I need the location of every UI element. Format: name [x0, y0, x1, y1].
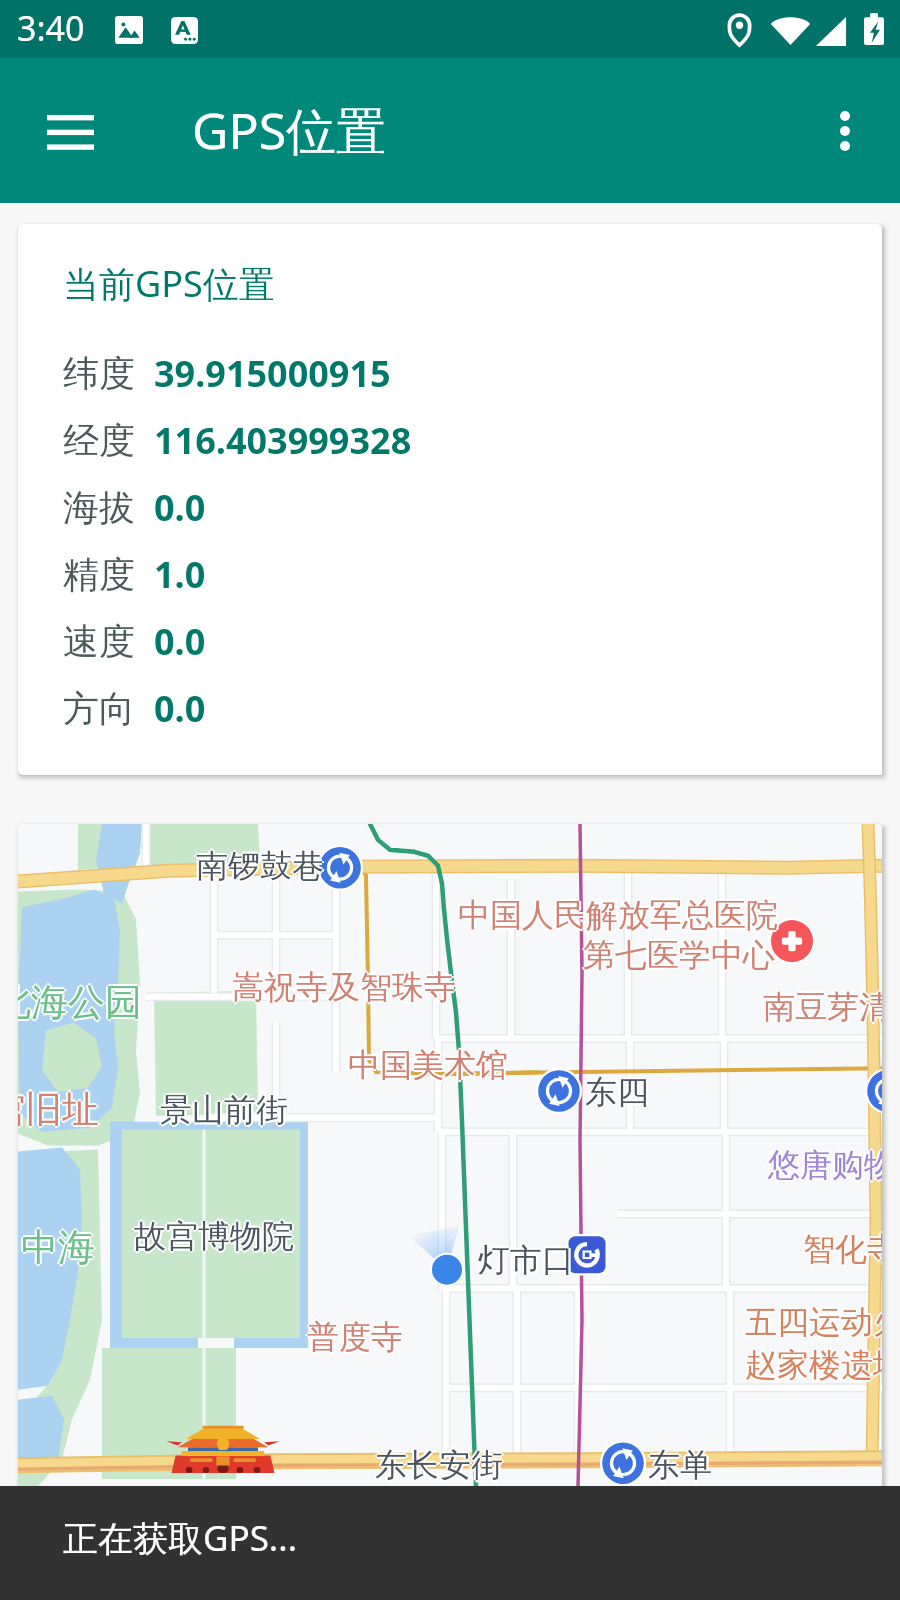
staticText: 东单: [650, 1445, 714, 1485]
staticText: 南豆芽清: [763, 987, 882, 1027]
staticText: 嵩祝寺及智珠寺: [232, 967, 456, 1007]
staticText: 馆旧址: [18, 1088, 99, 1135]
staticText: 南豆芽清: [765, 987, 882, 1027]
staticText: 第七医学中心: [583, 935, 775, 975]
staticText: 东单: [646, 1445, 710, 1485]
staticText: 赵家楼遗址: [745, 1347, 882, 1387]
staticText: 景山前街: [160, 1092, 288, 1132]
staticText: 故宫博物院: [134, 1216, 294, 1256]
staticText: 景山前街: [160, 1088, 288, 1128]
staticText: 南锣鼓巷: [198, 846, 326, 886]
staticText: 南锣鼓巷: [196, 848, 324, 888]
staticText: 中国人民解放军总医院: [458, 893, 778, 933]
staticText: 嵩祝寺及智珠寺: [234, 967, 458, 1007]
staticText: 馆旧址: [18, 1086, 97, 1133]
staticText: 南豆芽清: [763, 985, 882, 1025]
staticText: 东长安街: [375, 1447, 503, 1486]
staticText: 0.0: [154, 617, 206, 666]
staticText: 赵家楼遗址: [747, 1345, 882, 1385]
staticText: 东长安街: [375, 1445, 503, 1485]
staticText: 中国美术馆: [348, 1047, 508, 1087]
staticText: 馆旧址: [18, 1086, 101, 1133]
staticText: 普度寺: [305, 1317, 401, 1357]
staticText: 悠唐购物: [770, 1145, 882, 1185]
staticText: 第七医学中心: [583, 937, 775, 977]
staticText: 第七医学中心: [581, 935, 773, 975]
staticText: 普度寺: [307, 1315, 403, 1355]
staticText: 嵩祝寺及智珠寺: [232, 965, 456, 1005]
staticText: 五四运动火: [747, 1302, 882, 1342]
staticText: 中海: [21, 1224, 95, 1271]
staticText: 东四: [587, 1072, 651, 1112]
staticText: 中国美术馆: [348, 1045, 508, 1085]
staticText: 东长安街: [373, 1445, 501, 1485]
staticText: 北海公园: [18, 979, 144, 1026]
staticText: 智化寺: [803, 1231, 882, 1271]
staticText: 灯市口: [476, 1240, 572, 1280]
staticText: 当前GPS位置: [63, 259, 275, 308]
staticText: 3:40: [17, 5, 85, 51]
staticText: 0.0: [154, 684, 206, 733]
staticText: 赵家楼遗址: [745, 1343, 882, 1383]
staticText: 南豆芽清: [763, 989, 882, 1029]
staticText: 灯市口: [480, 1240, 576, 1280]
staticText: 第七医学中心: [583, 933, 775, 973]
staticText: 景山前街: [158, 1090, 286, 1130]
staticText: 正在获取GPS...: [63, 1514, 298, 1562]
staticText: 南锣鼓巷: [194, 846, 322, 886]
staticText: 南锣鼓巷: [196, 846, 324, 886]
staticText: 1.0: [154, 550, 206, 599]
staticText: GPS位置: [192, 96, 387, 164]
staticText: 普度寺: [307, 1317, 403, 1357]
staticText: 东四: [583, 1072, 647, 1112]
staticText: 故宫博物院: [134, 1214, 294, 1254]
staticText: 东单: [648, 1445, 712, 1485]
staticText: 中海: [23, 1224, 97, 1271]
staticText: 精度: [63, 552, 135, 597]
staticText: 东长安街: [377, 1445, 505, 1485]
staticText: 故宫博物院: [132, 1216, 292, 1256]
button[interactable]: Menu: [13, 74, 127, 188]
staticText: 东长安街: [375, 1443, 503, 1483]
staticText: 景山前街: [160, 1090, 288, 1130]
staticText: 北海公园: [18, 977, 142, 1024]
staticText: 海拔: [63, 485, 135, 530]
staticText: 速度: [63, 619, 135, 664]
staticText: 中海: [19, 1224, 93, 1271]
staticText: 普度寺: [307, 1319, 403, 1359]
staticText: 纬度: [63, 351, 135, 396]
staticText: 东四: [585, 1070, 649, 1110]
staticText: 中国美术馆: [348, 1043, 508, 1083]
staticText: 五四运动火: [745, 1302, 882, 1342]
staticText: 智化寺: [805, 1229, 882, 1269]
staticText: 悠唐购物: [768, 1147, 882, 1187]
staticText: 东单: [648, 1443, 712, 1483]
staticText: 赵家楼遗址: [745, 1345, 882, 1385]
button[interactable]: More options: [795, 81, 895, 181]
staticText: 南锣鼓巷: [196, 844, 324, 884]
staticText: 嵩祝寺及智珠寺: [230, 967, 454, 1007]
staticText: 赵家楼遗址: [743, 1345, 882, 1385]
staticText: 故宫博物院: [134, 1218, 294, 1258]
staticText: 五四运动火: [743, 1302, 882, 1342]
staticText: 五四运动火: [745, 1300, 882, 1340]
staticText: 馆旧址: [18, 1086, 99, 1133]
staticText: 中国人民解放军总医院: [458, 897, 778, 937]
staticText: 东四: [585, 1072, 649, 1112]
staticText: 中国美术馆: [350, 1045, 510, 1085]
staticText: 中国人民解放军总医院: [460, 895, 780, 935]
staticText: 中国人民解放军总医院: [458, 895, 778, 935]
staticText: 嵩祝寺及智珠寺: [232, 969, 456, 1009]
staticText: 北海公园: [18, 979, 140, 1026]
staticText: 普度寺: [309, 1317, 405, 1357]
staticText: 南豆芽清: [761, 987, 882, 1027]
staticText: 方向: [63, 686, 135, 731]
staticText: 中国美术馆: [346, 1045, 506, 1085]
staticText: 智化寺: [803, 1229, 882, 1269]
staticText: 0.0: [154, 483, 206, 532]
staticText: 东四: [585, 1074, 649, 1114]
staticText: 中海: [21, 1222, 95, 1269]
staticText: 故宫博物院: [136, 1216, 296, 1256]
staticText: 悠唐购物: [768, 1143, 882, 1183]
staticText: 智化寺: [803, 1227, 882, 1267]
